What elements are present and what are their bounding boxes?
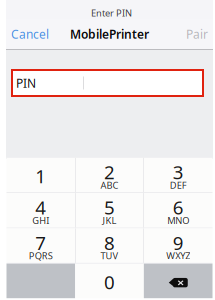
button[interactable]: Blank (6, 264, 75, 298)
staticText: 6 (173, 195, 184, 220)
staticText: Enter PIN (91, 7, 132, 19)
staticText: WXYZ (166, 249, 190, 262)
staticText: 8 (104, 230, 115, 255)
staticText: 9 (173, 230, 184, 255)
button[interactable]: 1 (6, 158, 75, 192)
staticText: Cancel (11, 26, 49, 42)
staticText: DEF (170, 179, 187, 191)
staticText: 4 (35, 195, 46, 220)
staticText: JKL (102, 214, 116, 227)
staticText: 5 (104, 195, 115, 220)
staticText: TUV (100, 249, 118, 262)
staticText: MobilePrinter (70, 26, 149, 42)
button[interactable]: 6 (144, 193, 212, 228)
staticText: 3 (173, 160, 184, 184)
staticText: 1 (35, 164, 46, 188)
staticText: 0 (104, 270, 115, 294)
button[interactable]: 0 (75, 264, 144, 298)
button[interactable]: 9 (144, 228, 212, 263)
staticText: GHI (32, 214, 49, 227)
staticText: 2 (104, 160, 115, 184)
button[interactable]: 2 (75, 158, 144, 192)
button[interactable]: Pair (181, 19, 213, 48)
button[interactable]: 5 (75, 193, 144, 228)
staticText: PQRS (29, 249, 53, 262)
staticText: PIN (16, 75, 36, 91)
button[interactable]: 3 (144, 158, 212, 192)
button[interactable]: 4 (6, 193, 75, 228)
staticText: Pair (186, 26, 208, 42)
staticText: 7 (35, 230, 46, 255)
button[interactable]: 7 (6, 228, 75, 263)
staticText: MNO (167, 214, 189, 227)
button[interactable]: Delete (144, 264, 212, 298)
button[interactable]: 8 (75, 228, 144, 263)
button[interactable]: Cancel (6, 19, 54, 48)
staticText: ABC (100, 179, 118, 191)
